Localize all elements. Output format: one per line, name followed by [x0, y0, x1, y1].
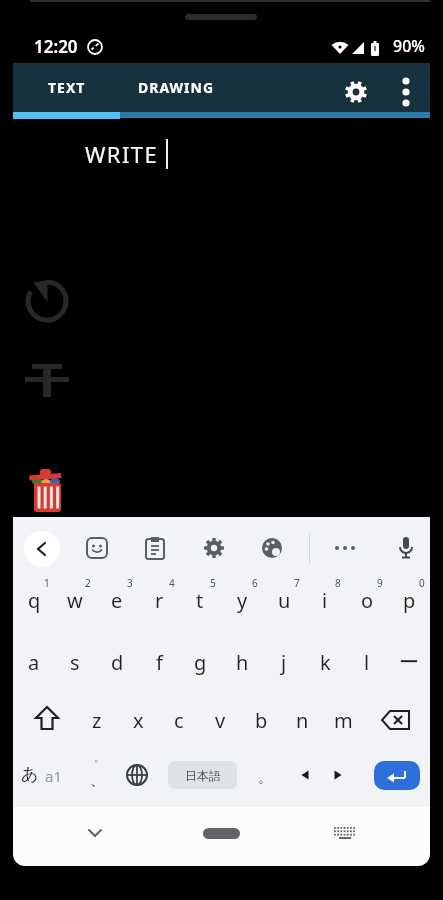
staticText: p: [403, 587, 416, 614]
button[interactable]: i: [305, 574, 345, 626]
staticText: a1: [45, 766, 62, 786]
button[interactable]: h: [222, 636, 262, 688]
staticText: x: [133, 707, 144, 734]
staticText: z: [92, 707, 102, 734]
button[interactable]: u: [264, 574, 304, 626]
staticText: 0: [419, 576, 425, 590]
staticText: i: [322, 587, 328, 614]
button[interactable]: b: [242, 696, 280, 744]
button[interactable]: [343, 79, 369, 105]
staticText: c: [174, 707, 184, 734]
button[interactable]: s: [55, 636, 95, 688]
button[interactable]: [394, 535, 418, 561]
staticText: f: [156, 649, 163, 676]
button[interactable]: [374, 761, 420, 790]
button[interactable]: f: [139, 636, 179, 688]
button[interactable]: [331, 821, 359, 843]
button[interactable]: e: [97, 574, 137, 626]
staticText: 90%: [393, 35, 425, 57]
staticText: w: [67, 587, 83, 614]
button[interactable]: [23, 276, 71, 324]
button[interactable]: [85, 536, 109, 560]
button[interactable]: [397, 75, 415, 109]
button[interactable]: [27, 463, 67, 513]
button[interactable]: y: [222, 574, 262, 626]
staticText: g: [194, 649, 207, 676]
staticText: t: [196, 587, 204, 614]
button[interactable]: [323, 760, 353, 790]
staticText: ー: [399, 650, 419, 675]
staticText: j: [281, 649, 287, 676]
button[interactable]: [331, 536, 359, 560]
staticText: r: [155, 587, 164, 614]
staticText: b: [255, 707, 268, 734]
staticText: 1: [44, 576, 50, 590]
staticText: 12:20: [34, 35, 78, 58]
button[interactable]: 、: [80, 765, 114, 795]
button[interactable]: a: [14, 636, 54, 688]
staticText: 5: [210, 576, 216, 590]
button[interactable]: [23, 356, 71, 400]
button[interactable]: n: [283, 696, 321, 744]
button[interactable]: DRAWING: [120, 63, 232, 112]
staticText: 3: [127, 576, 133, 590]
staticText: 2: [85, 576, 91, 590]
staticText: 8: [335, 576, 341, 590]
staticText: あ: [21, 764, 39, 785]
button[interactable]: [143, 536, 167, 560]
button[interactable]: k: [305, 636, 345, 688]
button[interactable]: [16, 752, 72, 798]
staticText: 9: [377, 576, 383, 590]
button[interactable]: [80, 818, 110, 848]
button[interactable]: [122, 760, 152, 790]
button[interactable]: 日本語: [168, 761, 237, 789]
button[interactable]: [24, 531, 60, 567]
button[interactable]: x: [119, 696, 157, 744]
staticText: y: [237, 587, 248, 614]
button[interactable]: [25, 696, 69, 744]
button[interactable]: c: [160, 696, 198, 744]
staticText: l: [364, 649, 370, 676]
button[interactable]: [260, 536, 284, 560]
button[interactable]: [202, 536, 226, 560]
button[interactable]: t: [180, 574, 220, 626]
staticText: 4: [169, 576, 175, 590]
staticText: n: [296, 707, 309, 734]
button[interactable]: j: [264, 636, 304, 688]
button[interactable]: o: [347, 574, 387, 626]
button[interactable]: g: [180, 636, 220, 688]
staticText: 7: [294, 576, 300, 590]
staticText: m: [334, 707, 353, 734]
staticText: ゜: [87, 758, 99, 770]
staticText: h: [236, 649, 249, 676]
staticText: d: [111, 649, 124, 676]
button[interactable]: [203, 828, 240, 839]
staticText: a: [28, 649, 40, 676]
staticText: DRAWING: [138, 78, 215, 97]
staticText: e: [111, 587, 123, 614]
staticText: 6: [252, 576, 258, 590]
staticText: TEXT: [48, 78, 86, 97]
staticText: 。: [258, 769, 272, 787]
button[interactable]: m: [324, 696, 362, 744]
staticText: 日本語: [185, 768, 221, 783]
staticText: s: [70, 649, 80, 676]
staticText: 、: [90, 771, 105, 790]
button[interactable]: TEXT: [13, 63, 120, 112]
button[interactable]: r: [139, 574, 179, 626]
button[interactable]: [373, 696, 419, 744]
button[interactable]: 。: [250, 763, 280, 793]
button[interactable]: [290, 760, 320, 790]
button[interactable]: d: [97, 636, 137, 688]
button[interactable]: w: [55, 574, 95, 626]
button[interactable]: p: [389, 574, 429, 626]
button[interactable]: z: [78, 696, 116, 744]
staticText: k: [320, 649, 331, 676]
staticText: o: [361, 587, 374, 614]
staticText: u: [278, 587, 291, 614]
button[interactable]: v: [201, 696, 239, 744]
staticText: WRITE: [85, 139, 159, 169]
button[interactable]: l: [347, 636, 387, 688]
button[interactable]: q: [14, 574, 54, 626]
button[interactable]: ー: [389, 636, 429, 688]
